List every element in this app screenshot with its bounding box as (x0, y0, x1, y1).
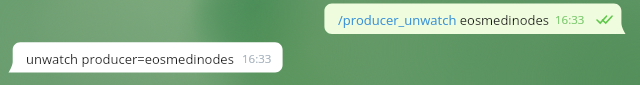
button[interactable]: /producer_unwatch eosmedinodes (322, 3, 630, 34)
staticText: unwatch producer=eosmedinodes (26, 50, 234, 68)
button[interactable]: unwatch producer=eosmedinodes (6, 42, 288, 73)
button[interactable] (596, 15, 616, 25)
staticText: /producer_unwatch eosmedinodes (338, 11, 549, 29)
staticText: 16:33 (242, 51, 272, 67)
staticText: 16:33 (555, 12, 585, 28)
